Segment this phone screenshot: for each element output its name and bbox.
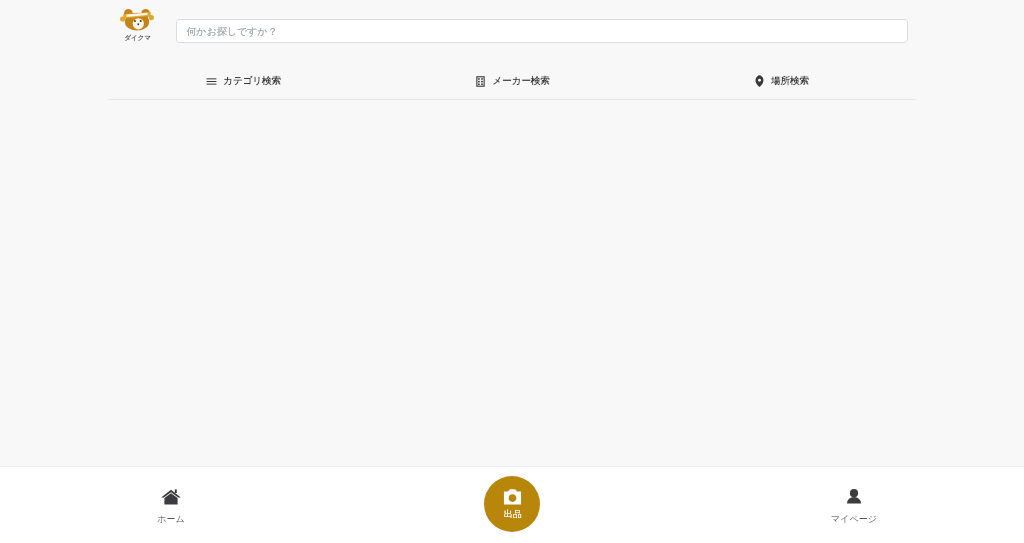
staticText: ホーム (157, 513, 185, 524)
button[interactable]: 何かお探しですか？ (176, 19, 908, 43)
staticText: マイページ (831, 513, 877, 524)
button[interactable]: ダイクマ ホーム (110, 6, 164, 42)
button[interactable]: ホーム (0, 487, 342, 524)
staticText: メーカー検索 (492, 75, 550, 87)
button[interactable]: カテゴリ検索 (108, 62, 378, 100)
button[interactable]: 場所検索 (647, 62, 916, 100)
button[interactable]: メーカー検索 (378, 62, 647, 100)
staticText: ダイクマ (124, 34, 151, 42)
staticText: 場所検索 (771, 75, 809, 87)
button[interactable]: 出品 (484, 476, 540, 532)
staticText: 何かお探しですか？ (186, 25, 278, 38)
button[interactable]: マイページ (683, 487, 1024, 524)
staticText: カテゴリ検索 (223, 75, 281, 87)
staticText: 出品 (504, 508, 522, 519)
